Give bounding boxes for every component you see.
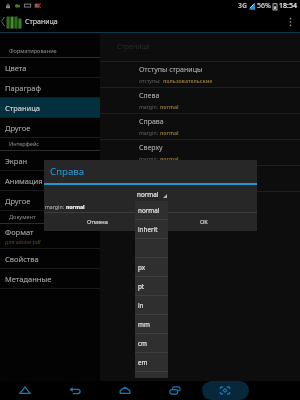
button[interactable]: mm (135, 315, 168, 333)
staticText: Формат (5, 227, 34, 237)
button[interactable]: Свойства (0, 249, 100, 268)
staticText: mm (138, 320, 150, 329)
button[interactable]: inherit (135, 220, 168, 238)
button[interactable]: Отступы страницы (100, 62, 300, 87)
staticText: Страница (25, 17, 58, 27)
staticText: OK (200, 218, 208, 226)
button[interactable]: Страница (0, 98, 100, 117)
button[interactable]: Параграф (0, 78, 100, 97)
button[interactable]: Другое (0, 191, 100, 210)
button[interactable]: pt (135, 277, 168, 295)
staticText: 3G (238, 1, 248, 11)
staticText: cm (138, 339, 147, 348)
button[interactable]: in (135, 296, 168, 314)
staticText: margin: (45, 203, 64, 210)
staticText: Свойства (5, 254, 39, 264)
staticText: em (138, 358, 148, 367)
button[interactable]: Справа (100, 114, 300, 139)
button[interactable]: Экран (0, 151, 100, 170)
button[interactable]: OK (150, 213, 257, 231)
button[interactable]: Другое (0, 118, 100, 137)
button[interactable]: Цвета (0, 58, 100, 77)
staticText: pt (138, 282, 145, 291)
staticText: Экран (5, 156, 28, 166)
staticText: Другое (5, 196, 31, 206)
staticText: inherit (138, 225, 158, 234)
staticText: normal (160, 129, 179, 136)
button[interactable]: Метаданные (0, 269, 100, 288)
staticText: Справа (139, 117, 164, 127)
staticText: margin: (139, 103, 158, 110)
staticText: Цвета (5, 63, 27, 73)
button[interactable]: em (135, 353, 168, 371)
button[interactable]: px (135, 258, 168, 276)
button[interactable]: Снизу (100, 166, 300, 191)
staticText: normal (66, 203, 85, 210)
button[interactable]: Сверху (100, 140, 300, 165)
button[interactable]: Back (50, 381, 100, 400)
staticText: normal (160, 181, 179, 188)
staticText: normal (138, 206, 160, 215)
staticText: 56% (257, 1, 271, 11)
button[interactable]: cm (135, 334, 168, 352)
staticText: Слева (139, 91, 160, 101)
staticText: Параграф (5, 83, 41, 93)
staticText: Страница (117, 42, 150, 52)
staticText: margin: (139, 181, 158, 188)
button[interactable]: Анимация (0, 171, 100, 190)
staticText: Отступы страницы (139, 65, 203, 75)
staticText: 18:54 (279, 1, 297, 11)
button[interactable]: Home (100, 381, 150, 400)
staticText: normal (160, 155, 179, 162)
staticText: Отмена (87, 218, 108, 226)
staticText: normal (137, 190, 159, 199)
staticText: px (138, 263, 146, 272)
button[interactable]: Navigate up (0, 11, 5, 32)
staticText: Справа (50, 165, 85, 178)
button[interactable]: Full screen (200, 381, 250, 400)
button[interactable]: normal (135, 201, 168, 219)
staticText: Документ (9, 213, 36, 221)
staticText: normal (160, 103, 179, 110)
staticText: Интерфейс (9, 140, 40, 148)
button[interactable]: normal (137, 189, 168, 200)
staticText: margin: (139, 129, 158, 136)
staticText: Другое (5, 123, 31, 133)
staticText: отступы: (139, 77, 161, 84)
button[interactable]: Up (0, 381, 50, 400)
staticText: пользовательские (163, 77, 213, 84)
button[interactable]: More options (280, 11, 300, 32)
staticText: Анимация (5, 176, 43, 186)
button[interactable]: Отмена (44, 213, 150, 231)
staticText: Метаданные (5, 274, 52, 284)
staticText: для adobe-pdf (5, 238, 41, 245)
staticText: Страница (5, 103, 41, 113)
button[interactable]: Формат (0, 224, 100, 248)
staticText: Сверху (139, 143, 163, 153)
staticText: margin: (139, 155, 158, 162)
staticText: Форматирование (9, 47, 57, 55)
button[interactable]: Слева (100, 88, 300, 113)
staticText: in (138, 301, 144, 310)
button[interactable]: Recent apps (150, 381, 200, 400)
